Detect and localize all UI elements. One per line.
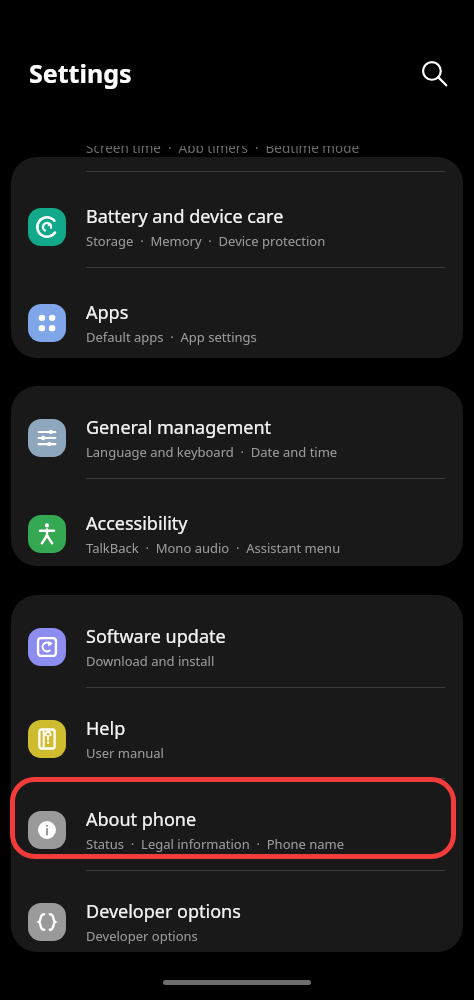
staticText: Developer options — [86, 927, 198, 945]
button[interactable]: About phone — [11, 791, 463, 869]
staticText: Battery and device care — [86, 204, 284, 229]
button[interactable]: Software update — [11, 608, 463, 686]
staticText: User manual — [86, 744, 164, 762]
staticText: Default apps · App settings — [86, 328, 257, 346]
staticText: General management — [86, 415, 272, 440]
staticText: Accessibility — [86, 511, 188, 536]
button[interactable]: Search — [412, 51, 456, 95]
staticText: Developer options — [86, 899, 241, 924]
staticText: Help — [86, 716, 126, 741]
button[interactable]: Help — [11, 700, 463, 778]
staticText: Settings — [29, 56, 132, 90]
staticText: Screen time · App timers · Bedtime mode — [86, 146, 360, 153]
staticText: Download and install — [86, 652, 215, 670]
staticText: Storage · Memory · Device protection — [86, 232, 326, 250]
button[interactable]: Apps — [11, 284, 463, 358]
staticText: Language and keyboard · Date and time — [86, 443, 338, 461]
button[interactable]: Developer options — [11, 883, 463, 952]
staticText: About phone — [86, 807, 197, 832]
staticText: Software update — [86, 624, 226, 649]
staticText: Apps — [86, 300, 129, 325]
staticText: Status · Legal information · Phone name — [86, 835, 345, 853]
button[interactable]: General management — [11, 399, 463, 477]
staticText: TalkBack · Mono audio · Assistant menu — [86, 539, 341, 557]
button[interactable]: Accessibility — [11, 495, 463, 566]
button[interactable]: Battery and device care — [11, 188, 463, 266]
